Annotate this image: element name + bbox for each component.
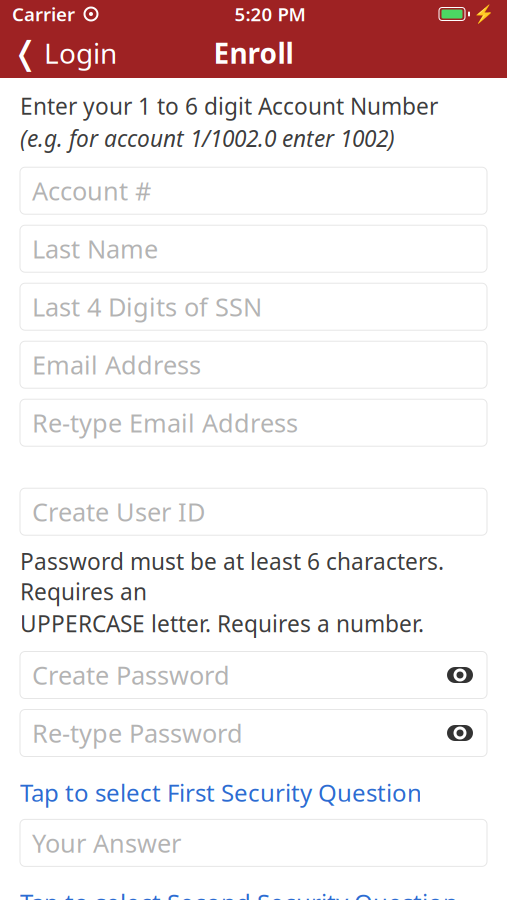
staticText: Last 4 Digits of SSN xyxy=(32,290,262,323)
staticText: Tap to select First Security Question xyxy=(20,776,422,808)
button[interactable]: Re-type Password xyxy=(20,709,487,756)
staticText: UPPERCASE letter. Requires a number. xyxy=(20,608,424,638)
staticText: 5:20 PM xyxy=(234,2,305,26)
button[interactable]: Email Address xyxy=(20,341,487,388)
button[interactable]: Account # xyxy=(20,167,487,214)
button[interactable]: Create User ID xyxy=(20,488,487,535)
staticText: Account # xyxy=(32,174,151,207)
button[interactable]: Last Name xyxy=(20,225,487,272)
staticText: Password must be at least 6 characters. … xyxy=(20,546,444,606)
staticText: (e.g. for account 1/1002.0 enter 1002) xyxy=(20,123,395,153)
staticText: ⚡ xyxy=(473,4,495,24)
staticText: Re-type Email Address xyxy=(32,406,298,439)
staticText: Tap to select Second Security Question xyxy=(20,886,458,900)
staticText: ❬ xyxy=(12,35,39,71)
staticText: Carrier xyxy=(12,2,75,26)
button[interactable]: Re-type Email Address xyxy=(20,399,487,446)
staticText: Email Address xyxy=(32,348,201,381)
staticText: Create Password xyxy=(32,658,230,692)
staticText: Login xyxy=(44,34,117,72)
staticText: Enter your 1 to 6 digit Account Number xyxy=(20,91,438,121)
button[interactable]: Tap to select Second Security Question xyxy=(20,886,487,900)
button[interactable]: Last 4 Digits of SSN xyxy=(20,283,487,330)
button[interactable]: ❬ xyxy=(0,30,129,76)
staticText: Enroll xyxy=(213,34,293,72)
button[interactable]: Your Answer xyxy=(20,819,487,866)
staticText: Re-type Password xyxy=(32,716,243,750)
staticText: Your Answer xyxy=(32,826,181,860)
button[interactable]: Create Password xyxy=(20,651,487,698)
staticText: Last Name xyxy=(32,232,158,265)
button[interactable]: Tap to select First Security Question xyxy=(20,776,487,808)
staticText: Create User ID xyxy=(32,495,205,528)
